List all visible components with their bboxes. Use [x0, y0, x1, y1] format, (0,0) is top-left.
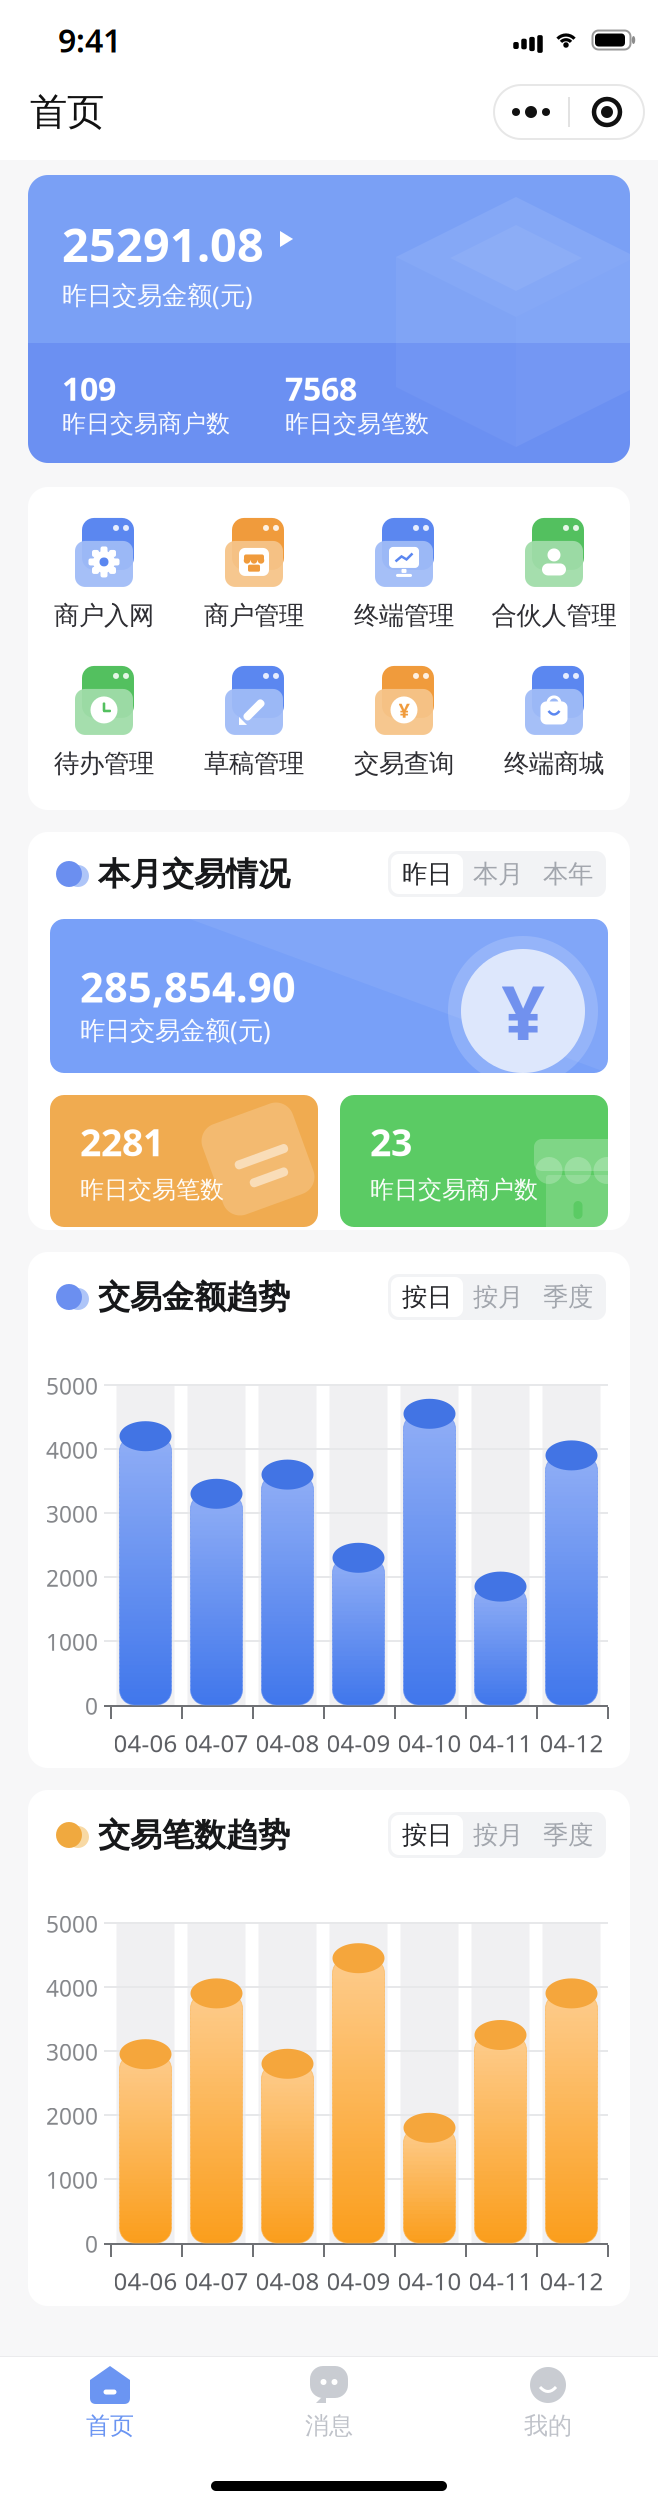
staticText: 0 — [85, 2229, 98, 2259]
button[interactable]: 按日 — [391, 1815, 463, 1855]
staticText: 04-09 — [326, 1727, 390, 1759]
staticText: 04-12 — [539, 1727, 603, 1759]
staticText: 昨日交易笔数 — [80, 1175, 224, 1204]
staticText: 04-09 — [326, 2265, 390, 2297]
button[interactable]: 本月 — [463, 854, 533, 894]
staticText: 交易笔数趋势 — [98, 1815, 290, 1855]
staticText: 04-06 — [113, 1727, 177, 1759]
staticText: ¥ — [501, 960, 544, 1061]
staticText: 按月 — [473, 1819, 523, 1850]
button[interactable]: 季度 — [533, 1277, 603, 1317]
button[interactable]: 按月 — [463, 1277, 533, 1317]
staticText: 3000 — [46, 2037, 98, 2067]
staticText: 25291.08 — [62, 213, 264, 275]
staticText: 04-11 — [468, 1727, 532, 1759]
staticText: 23 — [370, 1117, 412, 1167]
button[interactable]: 消息 — [219, 2359, 438, 2467]
button[interactable]: Home — [570, 85, 644, 139]
button[interactable]: 首页 — [0, 2359, 219, 2467]
staticText: 昨日交易商户数 — [62, 409, 230, 438]
staticText: 5000 — [46, 1371, 98, 1401]
staticText: 待办管理 — [54, 748, 154, 779]
staticText: 商户管理 — [204, 600, 304, 631]
button[interactable]: 本年 — [533, 854, 603, 894]
staticText: 终端管理 — [354, 600, 454, 631]
staticText: 2281 — [80, 1117, 164, 1167]
staticText: 2000 — [46, 2101, 98, 2131]
staticText: 04-08 — [255, 1727, 319, 1759]
staticText: 草稿管理 — [204, 748, 304, 779]
button[interactable]: More — [494, 85, 568, 139]
staticText: 04-10 — [397, 2265, 461, 2297]
staticText: 首页 — [30, 89, 104, 135]
button[interactable]: 商户入网 — [29, 508, 179, 640]
staticText: 0 — [85, 1691, 98, 1721]
staticText: 04-12 — [539, 2265, 603, 2297]
staticText: 04-07 — [184, 2265, 248, 2297]
button[interactable]: 商户管理 — [179, 508, 329, 640]
staticText: 季度 — [543, 1819, 593, 1850]
staticText: 按月 — [473, 1281, 523, 1312]
staticText: 3000 — [46, 1499, 98, 1529]
staticText: 04-07 — [184, 1727, 248, 1759]
staticText: 04-11 — [468, 2265, 532, 2297]
staticText: 1000 — [46, 2165, 98, 2195]
staticText: 按日 — [402, 1281, 452, 1312]
staticText: 285,854.90 — [80, 959, 296, 1014]
staticText: 5000 — [46, 1909, 98, 1939]
staticText: 交易查询 — [354, 748, 454, 779]
staticText: 昨日交易笔数 — [285, 409, 429, 438]
staticText: 交易金额趋势 — [98, 1277, 290, 1317]
button[interactable]: 季度 — [533, 1815, 603, 1855]
staticText: 本月交易情况 — [98, 854, 290, 894]
staticText: 昨日交易金额(元) — [80, 1013, 271, 1047]
button[interactable]: 草稿管理 — [179, 656, 329, 788]
staticText: 季度 — [543, 1281, 593, 1312]
staticText: 04-10 — [397, 1727, 461, 1759]
staticText: 4000 — [46, 1435, 98, 1465]
button[interactable]: 按日 — [391, 1277, 463, 1317]
staticText: 首页 — [86, 2411, 134, 2440]
staticText: 按日 — [402, 1819, 452, 1850]
staticText: 消息 — [305, 2411, 353, 2440]
staticText: 7568 — [285, 367, 357, 409]
staticText: 2000 — [46, 1563, 98, 1593]
button[interactable]: 按月 — [463, 1815, 533, 1855]
staticText: ¥ — [398, 697, 409, 723]
button[interactable]: 我的 — [438, 2359, 657, 2467]
staticText: 商户入网 — [54, 600, 154, 631]
staticText: 昨日 — [402, 858, 452, 889]
button[interactable]: ¥ — [329, 656, 479, 788]
staticText: 9:41 — [58, 19, 121, 61]
staticText: 昨日交易金额(元) — [62, 278, 253, 312]
button[interactable]: 昨日 — [391, 854, 463, 894]
staticText: 109 — [62, 367, 116, 409]
button[interactable]: 终端管理 — [329, 508, 479, 640]
button[interactable]: 25291.08 — [62, 213, 293, 275]
staticText: 本月 — [473, 858, 523, 889]
staticText: 04-08 — [255, 2265, 319, 2297]
staticText: 终端商城 — [504, 748, 604, 779]
staticText: 本年 — [543, 858, 593, 889]
staticText: 4000 — [46, 1973, 98, 2003]
staticText: 我的 — [524, 2411, 572, 2440]
button[interactable]: 终端商城 — [479, 656, 629, 788]
button[interactable]: 待办管理 — [29, 656, 179, 788]
staticText: 合伙人管理 — [491, 600, 616, 631]
button[interactable]: 合伙人管理 — [479, 508, 629, 640]
staticText: 1000 — [46, 1627, 98, 1657]
staticText: 昨日交易商户数 — [370, 1175, 538, 1204]
staticText: 04-06 — [113, 2265, 177, 2297]
